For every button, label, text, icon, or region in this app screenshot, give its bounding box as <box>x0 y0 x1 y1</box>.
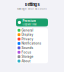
staticText: Sounds <box>22 46 34 50</box>
staticText: Privacy <box>22 37 34 41</box>
staticText: Manage your account <box>17 7 47 10</box>
staticText: General <box>22 28 34 32</box>
button[interactable]: Premium <box>16 18 48 26</box>
button[interactable]: About <box>16 59 48 63</box>
button[interactable]: Privacy <box>16 37 48 41</box>
staticText: Upgrade today <box>22 23 36 26</box>
button[interactable]: Sounds <box>16 46 48 50</box>
button[interactable]: Storage <box>16 54 48 59</box>
button[interactable]: General <box>16 28 48 32</box>
staticText: Premium <box>22 19 36 23</box>
button[interactable]: Focus <box>16 50 48 54</box>
staticText: Notifications <box>22 42 42 45</box>
button[interactable]: Display <box>16 32 48 37</box>
staticText: Settings <box>24 2 39 7</box>
button[interactable]: Notifications <box>16 41 48 46</box>
staticText: About <box>22 59 31 63</box>
staticText: Storage <box>22 55 34 58</box>
staticText: Focus <box>22 50 32 54</box>
staticText: Display <box>22 33 34 36</box>
